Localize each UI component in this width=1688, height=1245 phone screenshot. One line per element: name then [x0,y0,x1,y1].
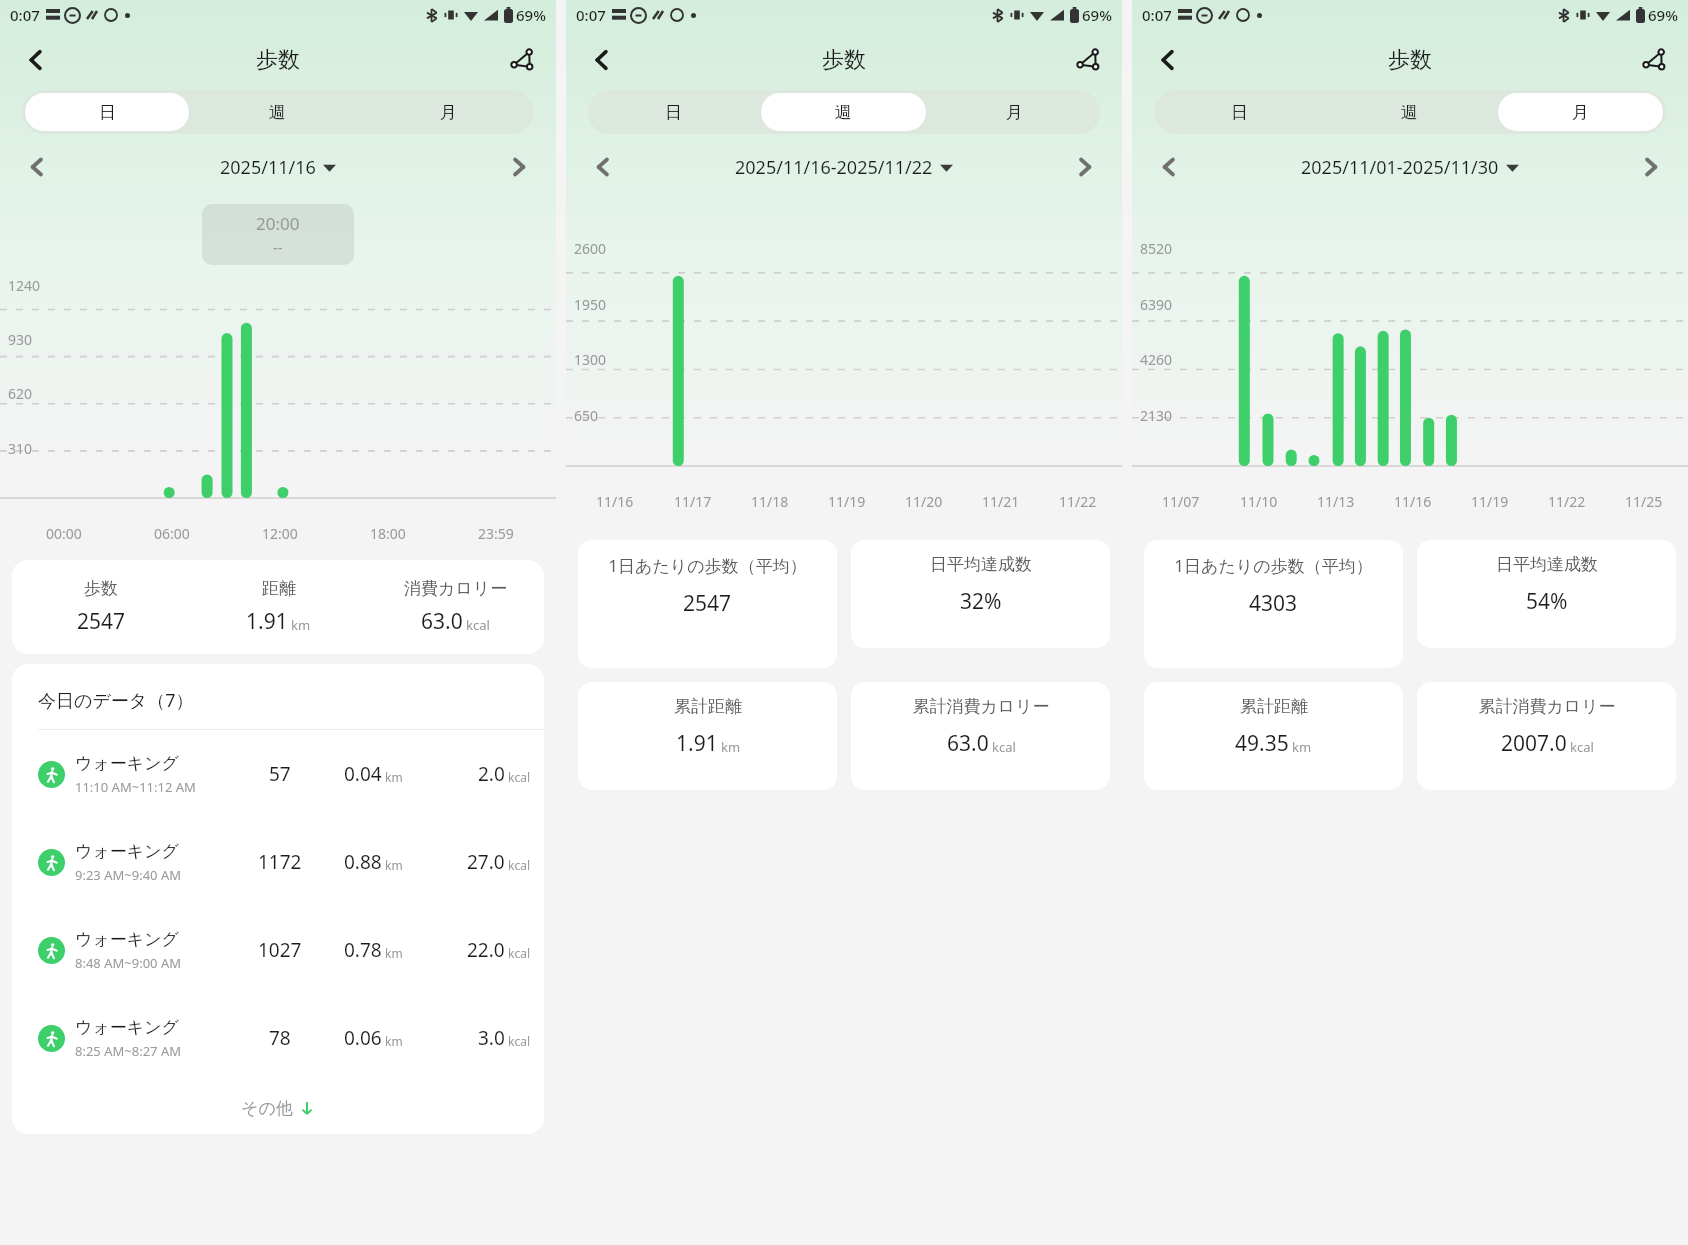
staticText: 11/25 [1625,492,1663,511]
button[interactable]: Share [1066,38,1110,82]
button[interactable]: 歩数 [12,560,544,654]
button[interactable]: 日平均達成数 [851,540,1110,648]
staticText: kcal [508,857,530,873]
staticText: 累計消費カロリー [912,696,1050,717]
staticText: 49.35 [1235,729,1289,758]
button[interactable]: ウォーキング [38,730,530,818]
staticText: 歩数 [256,46,300,74]
button[interactable]: 日 [1157,93,1321,131]
button[interactable]: 週 [761,93,926,131]
staticText: 11/21 [982,492,1020,511]
staticText: 27.0 [467,849,505,875]
staticText: 週 [1401,102,1418,123]
button[interactable]: 日平均達成数 [1417,540,1676,648]
button[interactable]: Share [500,38,544,82]
staticText: 距離 [262,578,296,599]
staticText: 0.88 [344,849,382,875]
button[interactable]: その他 [12,1082,544,1134]
staticText: 累計距離 [674,696,742,717]
button[interactable]: Back [1146,38,1190,82]
staticText: ウォーキング [75,841,179,862]
button[interactable]: Share [1632,38,1676,82]
staticText: 9:23 AM~9:40 AM [75,866,181,884]
staticText: 0.04 [344,761,382,787]
button[interactable]: 週 [1327,93,1492,131]
staticText: 11/17 [674,492,712,511]
button[interactable]: 日 [25,93,189,131]
staticText: 11/16 [1394,492,1432,511]
button[interactable]: 日 [591,93,755,131]
staticText: 650 [574,406,599,425]
button[interactable]: 週 [195,93,360,131]
staticText: 11/20 [905,492,943,511]
staticText: 69% [1648,5,1678,25]
staticText: 週 [835,102,852,123]
staticText: 0:07 [1142,5,1172,25]
staticText: 1950 [574,295,607,314]
staticText: 11/07 [1162,492,1200,511]
staticText: 32% [960,587,1002,616]
button[interactable]: 月 [932,93,1097,131]
staticText: 2.0 [478,761,505,787]
staticText: 11/18 [751,492,789,511]
button[interactable]: 2025/11/16 [60,155,496,180]
staticText: 1240 [8,276,41,295]
button[interactable]: 累計距離 [578,682,837,790]
staticText: 月 [1006,102,1023,123]
staticText: 69% [516,5,546,25]
staticText: 11/19 [1471,492,1509,511]
staticText: 累計距離 [1240,696,1308,717]
staticText: 週 [269,102,286,123]
staticText: 1172 [258,849,302,875]
staticText: 2025/11/01-2025/11/30 [1301,155,1499,180]
staticText: 2547 [683,589,732,618]
button[interactable]: ウォーキング [38,818,530,906]
staticText: 63.0 [947,729,989,758]
staticText: 8:48 AM~9:00 AM [75,954,181,972]
button[interactable]: Next [1628,144,1674,190]
staticText: km [721,738,741,756]
button[interactable]: Next [496,144,542,190]
staticText: 歩数 [822,46,866,74]
staticText: kcal [1570,738,1594,756]
button[interactable]: Previous [580,144,626,190]
button[interactable]: 累計消費カロリー [1417,682,1676,790]
staticText: 2007.0 [1501,729,1567,758]
staticText: 11/19 [828,492,866,511]
button[interactable]: Previous [1146,144,1192,190]
button[interactable]: Previous [14,144,60,190]
button[interactable]: 累計距離 [1144,682,1403,790]
button[interactable]: 2025/11/16-2025/11/22 [626,155,1062,180]
staticText: 8520 [1140,239,1173,258]
staticText: 8:25 AM~8:27 AM [75,1042,181,1060]
button[interactable]: ウォーキング [38,994,530,1082]
staticText: 2025/11/16-2025/11/22 [735,155,933,180]
staticText: 月 [1572,102,1589,123]
staticText: 930 [8,330,33,349]
button[interactable]: Next [1062,144,1108,190]
staticText: 0:07 [10,5,40,25]
staticText: kcal [508,1033,530,1049]
staticText: 今日のデータ（7） [38,688,194,713]
staticText: kcal [508,769,530,785]
staticText: 18:00 [370,524,406,543]
staticText: kcal [992,738,1016,756]
staticText: その他 [241,1098,293,1119]
staticText: 1.91 [676,729,718,758]
button[interactable]: 2025/11/01-2025/11/30 [1192,155,1628,180]
staticText: 620 [8,384,33,403]
staticText: 2600 [574,239,607,258]
button[interactable]: Back [580,38,624,82]
button[interactable]: ウォーキング [38,906,530,994]
button[interactable]: 月 [1498,93,1663,131]
staticText: 23:59 [478,524,514,543]
button[interactable]: 月 [366,93,531,131]
button[interactable]: Back [14,38,58,82]
button[interactable]: 1日あたりの歩数（平均） [1144,540,1403,668]
button[interactable]: 累計消費カロリー [851,682,1110,790]
staticText: 日 [665,102,682,123]
staticText: 06:00 [154,524,190,543]
button[interactable]: 1日あたりの歩数（平均） [578,540,837,668]
staticText: 1日あたりの歩数（平均） [608,554,807,577]
staticText: km [385,857,403,873]
